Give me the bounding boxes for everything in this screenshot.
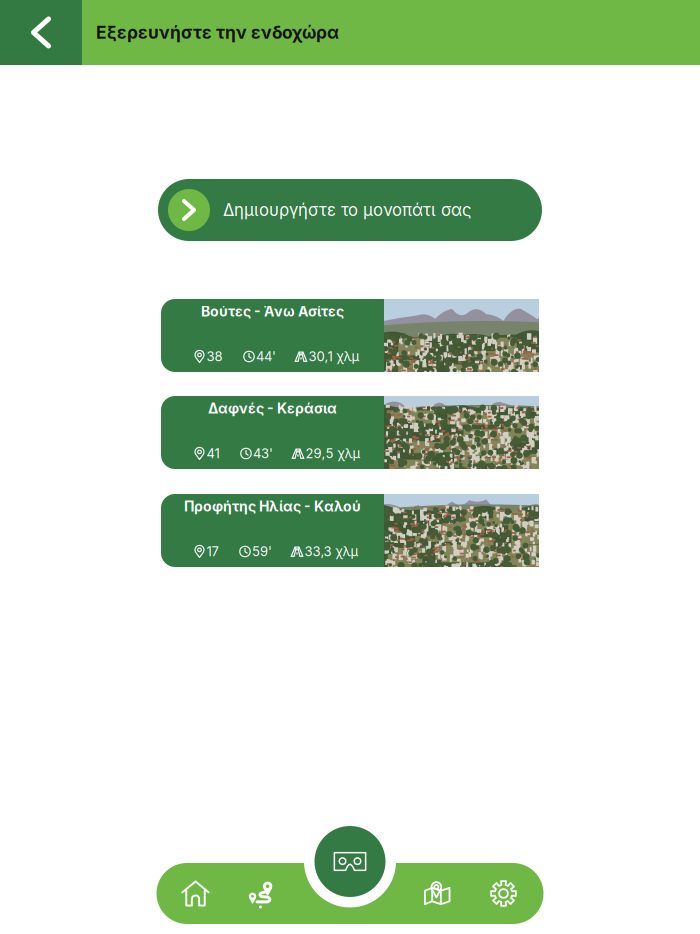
staticText: Εξερευνήστε την ενδοχώρα <box>96 22 339 43</box>
button[interactable]: Map <box>404 863 470 924</box>
staticText: 29,5 χλμ <box>305 446 360 461</box>
staticText: 43' <box>253 446 273 461</box>
button[interactable]: Προφήτης Ηλίας - Καλού <box>161 494 539 567</box>
staticText: 30,1 χλμ <box>308 349 359 364</box>
staticText: Προφήτης Ηλίας - Καλού <box>184 498 361 515</box>
button[interactable]: Settings <box>470 863 536 924</box>
staticText: 59' <box>252 544 272 559</box>
staticText: Δαφνές - Κεράσια <box>208 400 337 417</box>
staticText: 38 <box>206 349 222 364</box>
button[interactable]: Βούτες - Άνω Ασίτες <box>161 299 539 372</box>
staticText: 17 <box>206 544 218 559</box>
button[interactable]: Back <box>0 0 82 65</box>
staticText: 41 <box>206 446 219 461</box>
button[interactable]: Routes <box>228 863 294 924</box>
staticText: Δημιουργήστε το μονοπάτι σας <box>223 200 471 220</box>
staticText: 44' <box>256 349 276 364</box>
button[interactable]: Δημιουργήστε το μονοπάτι σας <box>158 179 542 241</box>
button[interactable]: VR view <box>314 826 385 897</box>
staticText: Βούτες - Άνω Ασίτες <box>201 303 344 320</box>
button[interactable]: Home <box>162 863 228 924</box>
button[interactable]: Δαφνές - Κεράσια <box>161 396 539 469</box>
staticText: 33,3 χλμ <box>304 544 358 559</box>
